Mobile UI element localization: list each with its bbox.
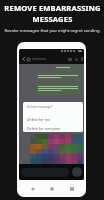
button[interactable]: Home bbox=[47, 184, 56, 193]
staticText: Delete message? bbox=[27, 105, 53, 109]
button[interactable]: Call bbox=[75, 58, 78, 61]
button[interactable]: Delete for everyone bbox=[23, 124, 83, 132]
button[interactable]: Back bbox=[21, 56, 26, 61]
staticText: REMOVE EMBARRASSING bbox=[4, 3, 101, 13]
staticText: MESSAGES bbox=[32, 14, 73, 24]
button[interactable]: Back bbox=[28, 184, 37, 193]
staticText: Delete for me bbox=[27, 117, 51, 122]
button[interactable]: Delete for me bbox=[23, 115, 83, 123]
button[interactable]: Send bbox=[72, 167, 82, 177]
staticText: Delete for everyone bbox=[27, 126, 61, 131]
staticText: Revoke messages that you might regret se… bbox=[4, 28, 100, 34]
button[interactable]: Recents bbox=[67, 184, 76, 193]
